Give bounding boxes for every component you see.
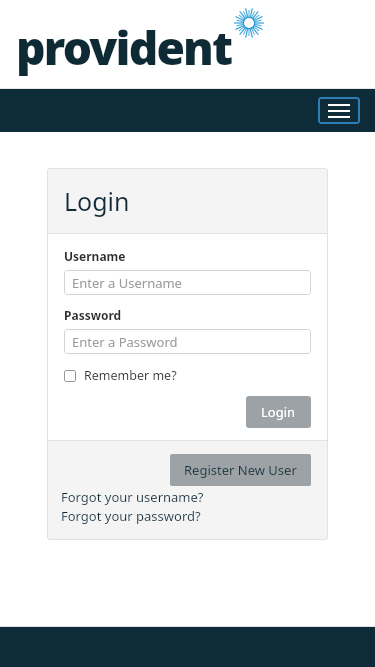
button[interactable]: Enter a Username xyxy=(64,270,311,295)
staticText: Username xyxy=(64,248,126,264)
staticText: Enter a Username xyxy=(72,274,182,292)
staticText: Enter a Password xyxy=(72,333,178,351)
staticText: Remember me? xyxy=(84,367,177,384)
staticText: provident xyxy=(16,16,232,79)
button[interactable]: Register New User xyxy=(170,454,311,486)
staticText: Register New User xyxy=(184,461,297,479)
staticText: Login xyxy=(261,403,296,421)
button[interactable]: Remember me? xyxy=(64,367,177,384)
button[interactable]: Forgot your password? xyxy=(61,507,201,525)
staticText: Login xyxy=(64,184,130,218)
button[interactable]: Login xyxy=(246,396,311,428)
button[interactable]: Forgot your username? xyxy=(61,488,204,506)
button[interactable]: Menu xyxy=(318,97,360,124)
button[interactable]: Enter a Password xyxy=(64,329,311,354)
staticText: Password xyxy=(64,307,122,323)
